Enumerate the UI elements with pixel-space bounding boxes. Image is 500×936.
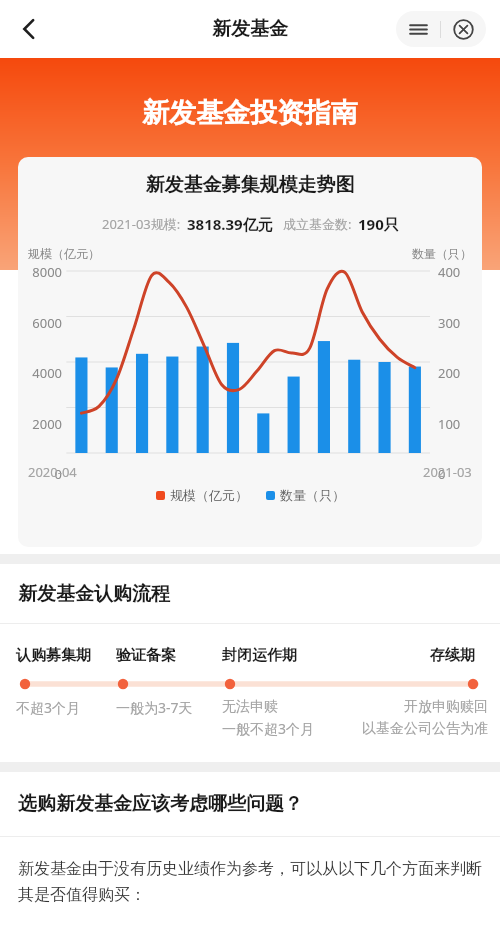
staticText: 开放申购赎回 以基金公司公告为准 <box>340 698 488 737</box>
staticText: 200 <box>438 364 461 380</box>
staticText: 400 <box>438 263 461 279</box>
staticText: 数量（只） <box>280 487 345 503</box>
staticText: 4000 <box>32 364 62 380</box>
staticText: 2000 <box>32 415 62 431</box>
staticText: 2021-03 <box>423 463 472 481</box>
staticText: 封闭运作期 <box>222 646 297 665</box>
staticText: 规模（亿元） <box>170 487 248 503</box>
staticText: 认购募集期 <box>16 646 91 665</box>
button[interactable]: Back <box>6 6 52 52</box>
staticText: 新发基金认购流程 <box>18 582 170 606</box>
staticText: 300 <box>438 314 461 330</box>
staticText: 无法申赎 一般不超3个月 <box>222 698 315 738</box>
staticText: 2020-04 <box>28 463 77 481</box>
staticText: 存续期 <box>430 646 475 665</box>
staticText: 3818.39亿元 <box>187 214 273 234</box>
staticText: 规模（亿元） <box>28 246 100 261</box>
staticText: 新发基金投资指南 <box>0 96 500 130</box>
staticText: 选购新发基金应该考虑哪些问题？ <box>18 792 303 816</box>
staticText: 新发基金募集规模走势图 <box>18 173 482 197</box>
staticText: 6000 <box>32 314 62 330</box>
staticText: 0 <box>54 465 62 481</box>
button[interactable]: Close <box>441 11 486 47</box>
staticText: 2021-03规模: <box>102 215 181 233</box>
staticText: 不超3个月 <box>16 698 81 717</box>
staticText: 新发基金由于没有历史业绩作为参考，可以从以下几个方面来判断其是否值得购买： <box>18 859 482 905</box>
staticText: 成立基金数: <box>283 215 352 233</box>
staticText: 新发基金 <box>212 17 288 41</box>
button[interactable]: Menu <box>396 11 440 47</box>
staticText: 100 <box>438 415 461 431</box>
staticText: 一般为3-7天 <box>116 698 193 717</box>
staticText: 0 <box>438 465 446 481</box>
staticText: 验证备案 <box>116 646 176 665</box>
staticText: 190只 <box>358 214 399 234</box>
staticText: 数量（只） <box>412 246 472 261</box>
staticText: 8000 <box>32 263 62 279</box>
